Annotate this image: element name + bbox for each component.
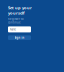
staticText: Register to xyxy=(8,17,24,21)
staticText: yourself xyxy=(8,10,25,16)
staticText: Name xyxy=(9,28,16,31)
staticText: continue xyxy=(8,21,21,24)
staticText: Sign in xyxy=(14,36,24,39)
staticText: Set up your xyxy=(8,5,32,10)
button[interactable]: Sign in xyxy=(8,35,31,40)
